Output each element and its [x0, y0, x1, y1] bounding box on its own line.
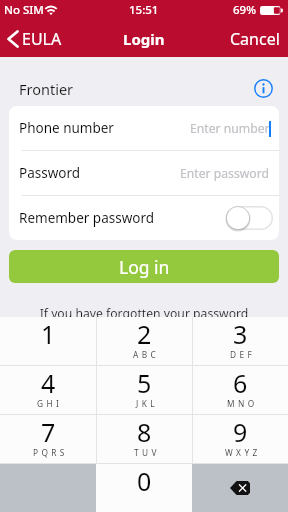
button[interactable]: Password	[9, 151, 279, 195]
button[interactable]: 6	[193, 366, 288, 414]
button[interactable]: Delete	[192, 464, 288, 512]
staticText: Remember password	[19, 209, 155, 227]
staticText: 69%	[233, 2, 256, 18]
staticText: 6	[233, 366, 248, 400]
button[interactable]: Remember password	[226, 206, 273, 230]
staticText: ABC	[133, 349, 160, 360]
button[interactable]: 0	[96, 464, 192, 512]
button[interactable]: 2	[97, 317, 192, 365]
staticText: WXYZ	[225, 447, 261, 458]
staticText: No SIM	[4, 2, 44, 18]
staticText: PQRS	[33, 447, 68, 458]
staticText: 3	[233, 317, 248, 351]
button[interactable]: 3	[193, 317, 288, 365]
staticText: EULA	[22, 28, 62, 50]
staticText: Cancel	[230, 28, 280, 50]
staticText: TUV	[134, 447, 160, 458]
button[interactable]: Cancel	[222, 22, 288, 56]
button[interactable]: 9	[193, 415, 288, 463]
staticText: Enter number	[190, 120, 270, 137]
staticText: 5	[137, 366, 152, 400]
staticText: 9	[233, 415, 248, 449]
staticText: 8	[137, 415, 152, 449]
staticText: 2	[137, 317, 152, 351]
button[interactable]: Log in	[9, 250, 279, 283]
staticText: 4	[41, 366, 56, 400]
staticText: GHI	[37, 398, 63, 409]
button[interactable]: 5	[97, 366, 192, 414]
staticText: Phone number	[19, 119, 114, 137]
staticText: DEF	[230, 349, 256, 360]
staticText: 1	[41, 317, 56, 351]
button[interactable]: 8	[97, 415, 192, 463]
button[interactable]: 4	[0, 366, 96, 414]
button[interactable]: 7	[0, 415, 96, 463]
staticText: Enter password	[180, 165, 270, 182]
button[interactable]: 1	[0, 317, 96, 365]
staticText: JKL	[136, 398, 158, 409]
staticText: Password	[19, 164, 81, 182]
button[interactable]: Phone number	[9, 106, 279, 150]
button[interactable]: Remember password	[9, 196, 279, 240]
staticText: MNO	[227, 398, 258, 409]
staticText: Log in	[119, 255, 170, 279]
button[interactable]: Information	[254, 79, 273, 98]
staticText: 15:51	[129, 2, 159, 18]
button[interactable]: EULA	[0, 22, 70, 56]
staticText: 7	[41, 415, 56, 449]
staticText: If you have forgotten your password	[0, 305, 288, 322]
staticText: Login	[123, 29, 165, 49]
staticText: Frontier	[19, 79, 74, 99]
staticText: 0	[137, 464, 152, 498]
